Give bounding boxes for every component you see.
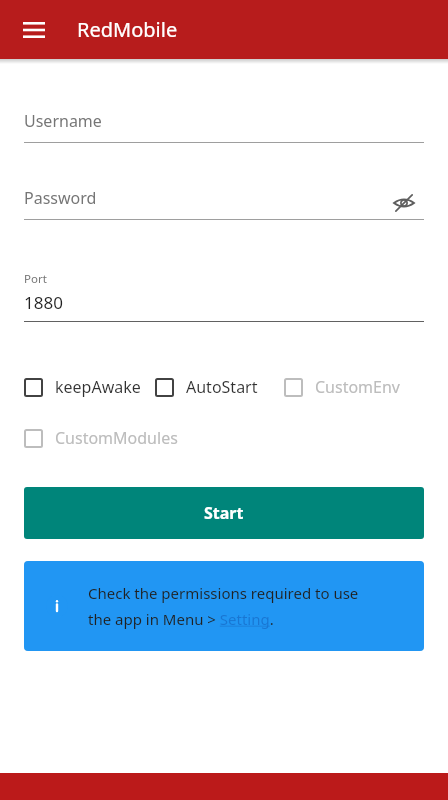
button[interactable]: Password input: [24, 187, 424, 220]
staticText: CustomModules: [55, 427, 178, 449]
staticText: the app in Menu > Setting.: [88, 609, 274, 629]
staticText: Port: [24, 271, 47, 287]
button[interactable]: Port: [24, 271, 424, 322]
staticText: AutoStart: [186, 376, 258, 398]
staticText: Check the permissions required to use: [88, 583, 359, 603]
staticText: Username: [24, 110, 102, 132]
button[interactable]: AutoStart: [155, 374, 258, 400]
button[interactable]: Start: [24, 487, 424, 539]
staticText: keepAwake: [55, 376, 141, 398]
button[interactable]: keepAwake: [24, 374, 141, 400]
button[interactable]: Check the permissions required to use: [24, 561, 424, 651]
staticText: RedMobile: [77, 16, 178, 43]
staticText: 1880: [24, 291, 63, 314]
button[interactable]: Username input: [24, 110, 424, 143]
button[interactable]: Show password: [384, 183, 424, 223]
button[interactable]: CustomModules: [24, 425, 178, 451]
button[interactable]: Open navigation menu: [10, 6, 58, 54]
staticText: Password: [24, 187, 97, 209]
staticText: CustomEnv: [315, 376, 400, 398]
staticText: Start: [204, 502, 244, 524]
button[interactable]: CustomEnv: [284, 374, 400, 400]
